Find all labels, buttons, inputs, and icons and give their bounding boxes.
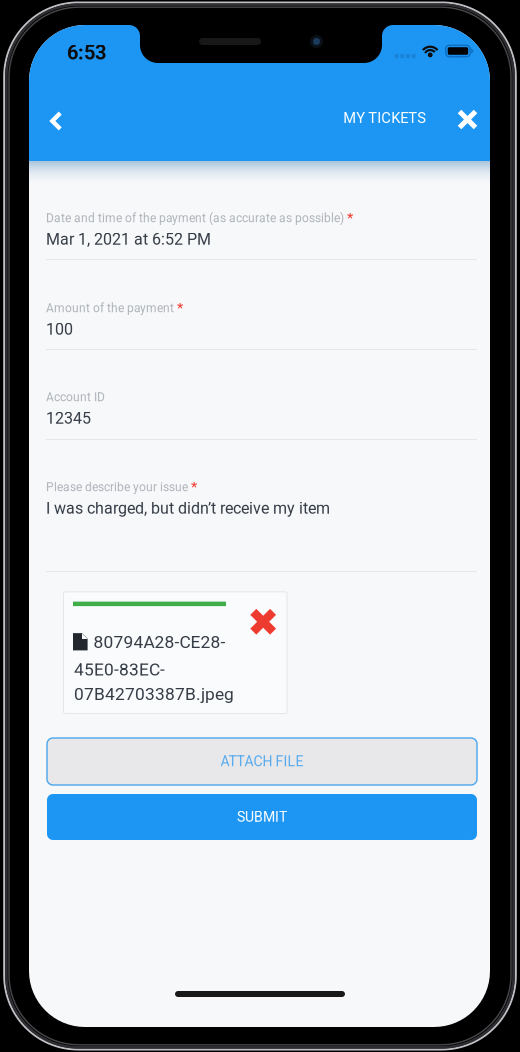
button[interactable]: Remove attachment <box>249 608 277 636</box>
staticText: Date and time of the payment (as accurat… <box>46 211 344 225</box>
staticText: I was charged, but didn’t receive my ite… <box>46 499 330 518</box>
staticText: 100 <box>46 320 73 339</box>
staticText: Please describe your issue <box>46 480 188 494</box>
button[interactable]: Close <box>444 96 490 142</box>
staticText: * <box>177 300 183 317</box>
button[interactable]: ATTACH FILE <box>47 738 477 785</box>
button[interactable]: Back <box>33 98 79 144</box>
staticText: Mar 1, 2021 at 6:52 PM <box>46 230 211 249</box>
button[interactable]: SUBMIT <box>47 794 477 840</box>
staticText: ATTACH FILE <box>220 753 303 770</box>
staticText: * <box>191 479 197 496</box>
staticText: 6:53 <box>67 41 106 64</box>
staticText: 07B42703387B.jpeg <box>74 684 234 704</box>
staticText: SUBMIT <box>237 809 287 825</box>
staticText: Account ID <box>46 390 105 404</box>
staticText: 12345 <box>46 409 91 428</box>
staticText: Amount of the payment <box>46 301 174 315</box>
staticText: * <box>347 210 353 227</box>
staticText: 80794A28-CE28- <box>93 632 225 652</box>
staticText: MY TICKETS <box>343 109 426 127</box>
staticText: 45E0-83EC- <box>74 659 165 680</box>
button[interactable]: MY TICKETS <box>343 109 426 127</box>
